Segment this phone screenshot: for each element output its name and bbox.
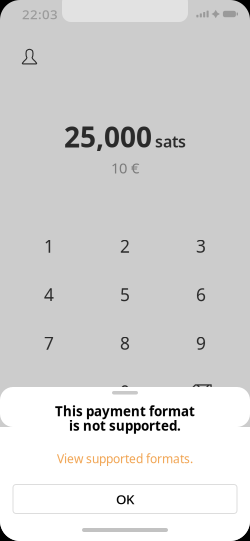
button[interactable]: 3	[163, 222, 239, 270]
staticText: 1	[44, 234, 54, 257]
staticText: 8	[120, 331, 130, 354]
staticText: 2	[120, 234, 130, 257]
button[interactable]: 7	[11, 319, 87, 367]
staticText: 4	[44, 283, 54, 306]
button[interactable]: OK	[13, 484, 237, 513]
button[interactable]: View supported formats.	[57, 448, 193, 468]
staticText: 25,000	[64, 118, 152, 155]
button[interactable]: 4	[11, 270, 87, 319]
staticText: 22:03	[22, 5, 58, 23]
button[interactable]: 5	[87, 270, 163, 319]
staticText: 6	[196, 283, 206, 306]
staticText: View supported formats.	[57, 450, 193, 466]
staticText: 7	[44, 331, 54, 354]
staticText: ⌫	[188, 382, 213, 401]
button[interactable]: Profile	[22, 43, 54, 71]
staticText: is not supported.	[69, 417, 181, 434]
staticText: OK	[116, 490, 134, 508]
button[interactable]: 9	[163, 319, 239, 367]
staticText: 9	[196, 331, 206, 354]
staticText: This payment format	[55, 402, 195, 420]
staticText: 3	[196, 234, 206, 257]
button[interactable]: ,	[11, 367, 87, 416]
staticText: ,	[46, 380, 51, 403]
button[interactable]: 1	[11, 222, 87, 270]
staticText: sats	[155, 131, 186, 152]
button[interactable]: ⌫	[163, 367, 239, 416]
button[interactable]: 2	[87, 222, 163, 270]
button[interactable]: 6	[163, 270, 239, 319]
button[interactable]: 0	[87, 367, 163, 416]
staticText: 0	[120, 380, 130, 403]
button[interactable]: 8	[87, 319, 163, 367]
staticText: 10 €	[111, 158, 139, 178]
staticText: 5	[120, 283, 130, 306]
